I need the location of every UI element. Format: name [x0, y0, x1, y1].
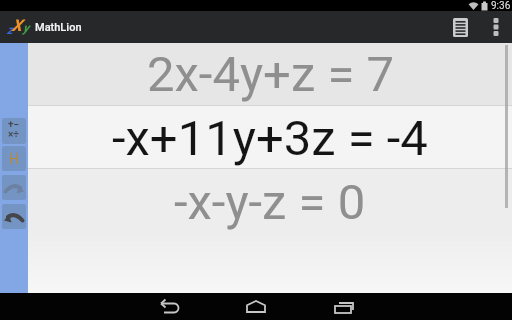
button[interactable]: +−: [2, 118, 26, 144]
button[interactable]: [2, 204, 26, 229]
button[interactable]: [239, 293, 273, 320]
button[interactable]: [153, 293, 187, 320]
button[interactable]: 2x-4y+z = 7: [28, 43, 512, 105]
staticText: X: [12, 16, 22, 35]
staticText: 9:36: [491, 0, 511, 11]
staticText: ×÷: [8, 129, 20, 141]
staticText: +−: [8, 119, 20, 131]
button[interactable]: [2, 175, 26, 200]
staticText: 2x-4y+z = 7: [147, 46, 394, 103]
button[interactable]: [480, 11, 512, 43]
button[interactable]: [326, 293, 360, 320]
button[interactable]: -x+11y+3z = -4: [28, 106, 512, 168]
staticText: y: [23, 21, 29, 35]
staticText: H: [9, 151, 19, 167]
staticText: z: [7, 23, 13, 37]
button[interactable]: H: [2, 146, 26, 171]
button[interactable]: -x-y-z = 0: [28, 169, 512, 232]
button[interactable]: [443, 11, 479, 43]
staticText: MathLion: [35, 21, 82, 34]
staticText: -x-y-z = 0: [174, 174, 366, 231]
staticText: -x+11y+3z = -4: [112, 110, 428, 167]
